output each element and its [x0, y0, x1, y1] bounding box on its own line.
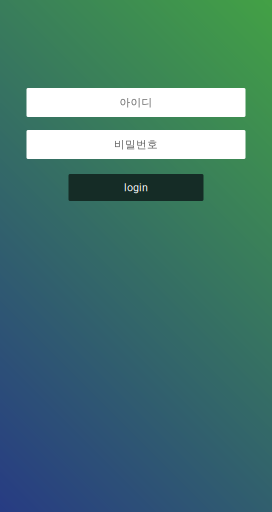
button[interactable]: 아이디 [26, 88, 245, 117]
button[interactable]: 비밀번호 [26, 130, 245, 159]
staticText: 비밀번호 [114, 138, 158, 151]
staticText: login [124, 181, 148, 194]
button[interactable]: login [68, 174, 203, 201]
staticText: 아이디 [119, 96, 152, 109]
